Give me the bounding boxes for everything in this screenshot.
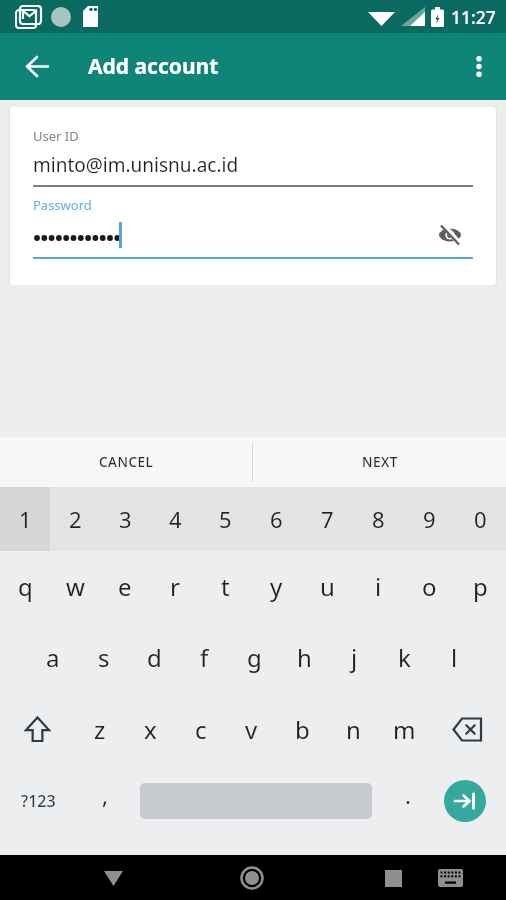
button[interactable] — [95, 860, 131, 896]
staticText: f — [200, 641, 209, 674]
staticText: v — [245, 713, 258, 746]
staticText: d — [147, 641, 162, 674]
staticText: b — [295, 713, 310, 746]
button[interactable] — [0, 33, 74, 100]
staticText: w — [66, 570, 85, 603]
staticText: x — [144, 713, 157, 746]
staticText: t — [221, 570, 230, 603]
staticText: 9 — [423, 504, 436, 534]
staticText: k — [398, 641, 411, 674]
button[interactable]: p — [455, 551, 506, 621]
button[interactable] — [33, 218, 473, 252]
button[interactable]: i — [353, 551, 404, 621]
staticText: minto@im.unisnu.ac.id — [33, 152, 239, 178]
staticText: u — [320, 570, 335, 603]
staticText: Password — [33, 196, 92, 214]
staticText: 11:27 — [451, 5, 496, 29]
button[interactable]: n — [328, 693, 379, 765]
button[interactable]: 3 — [100, 487, 150, 551]
button[interactable]: CANCEL — [0, 437, 252, 487]
staticText: r — [170, 570, 180, 603]
staticText: n — [346, 713, 361, 746]
button[interactable] — [234, 860, 270, 896]
button[interactable] — [444, 780, 486, 822]
staticText: 8 — [372, 504, 385, 534]
button[interactable]: x — [125, 693, 175, 765]
button[interactable]: r — [150, 551, 200, 621]
staticText: g — [247, 641, 262, 674]
button[interactable]: k — [379, 621, 429, 693]
staticText: p — [473, 570, 488, 603]
staticText: 1 — [19, 504, 32, 534]
button[interactable]: NEXT — [253, 437, 506, 487]
staticText: s — [98, 641, 110, 674]
staticText: c — [195, 713, 207, 746]
button[interactable]: 5 — [200, 487, 251, 551]
button[interactable]: t — [200, 551, 251, 621]
staticText: h — [297, 641, 312, 674]
button[interactable]: u — [302, 551, 353, 621]
staticText: z — [94, 713, 106, 746]
button[interactable]: . — [372, 765, 444, 837]
button[interactable] — [430, 858, 470, 898]
button[interactable]: e — [100, 551, 150, 621]
staticText: q — [18, 570, 33, 603]
staticText: o — [422, 570, 437, 603]
button[interactable]: j — [329, 621, 379, 693]
button[interactable]: a — [27, 621, 78, 693]
button[interactable]: 9 — [404, 487, 455, 551]
staticText: l — [451, 641, 458, 674]
button[interactable] — [0, 693, 75, 765]
staticText: . — [405, 780, 411, 810]
button[interactable] — [452, 33, 506, 100]
button[interactable] — [375, 860, 411, 896]
button[interactable]: c — [175, 693, 226, 765]
button[interactable]: 6 — [251, 487, 302, 551]
button[interactable] — [435, 220, 465, 250]
button[interactable]: d — [129, 621, 179, 693]
staticText: 2 — [69, 504, 82, 534]
staticText: y — [270, 570, 283, 603]
button[interactable]: minto@im.unisnu.ac.id — [33, 152, 473, 178]
staticText: CANCEL — [99, 453, 154, 471]
button[interactable]: l — [429, 621, 479, 693]
staticText: 4 — [169, 504, 182, 534]
button[interactable]: 2 — [50, 487, 100, 551]
button[interactable]: y — [251, 551, 302, 621]
button[interactable]: 7 — [302, 487, 353, 551]
staticText: 5 — [219, 504, 232, 534]
button[interactable]: 8 — [353, 487, 404, 551]
staticText: ?123 — [21, 790, 56, 812]
staticText: m — [393, 713, 416, 746]
staticText: 7 — [321, 504, 334, 534]
staticText: User ID — [33, 127, 79, 145]
staticText: 6 — [270, 504, 283, 534]
button[interactable]: q — [0, 551, 50, 621]
staticText: e — [118, 570, 132, 603]
button[interactable]: z — [75, 693, 125, 765]
staticText: 3 — [119, 504, 132, 534]
button[interactable]: o — [404, 551, 455, 621]
button[interactable]: , — [76, 765, 133, 837]
staticText: i — [375, 570, 382, 603]
staticText: a — [46, 641, 60, 674]
button[interactable]: 4 — [150, 487, 200, 551]
staticText: Add account — [88, 52, 219, 81]
button[interactable]: f — [179, 621, 229, 693]
button[interactable]: s — [78, 621, 129, 693]
button[interactable]: 1 — [0, 487, 50, 551]
button[interactable]: m — [379, 693, 430, 765]
button[interactable]: h — [279, 621, 329, 693]
button[interactable] — [430, 693, 506, 765]
button[interactable]: g — [229, 621, 279, 693]
button[interactable]: 0 — [455, 487, 506, 551]
button[interactable]: ?123 — [0, 765, 76, 837]
button[interactable]: b — [277, 693, 328, 765]
staticText: j — [351, 641, 358, 674]
button[interactable]: w — [50, 551, 100, 621]
staticText: , — [102, 780, 108, 810]
staticText: NEXT — [362, 453, 398, 471]
staticText: 0 — [474, 504, 487, 534]
button[interactable]: v — [226, 693, 277, 765]
